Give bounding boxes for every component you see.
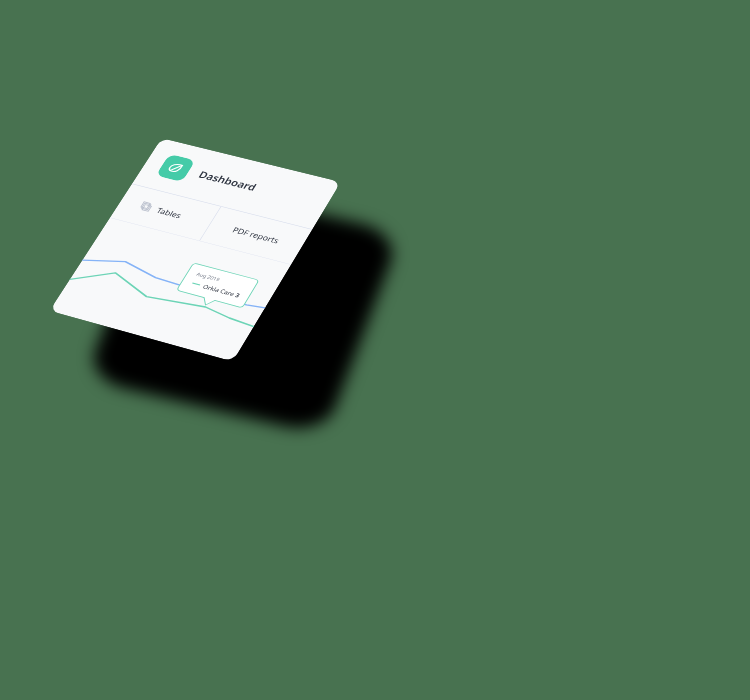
- other: Leaf logo: [155, 154, 196, 182]
- button[interactable]: Tables: [110, 184, 221, 240]
- staticText: Tables: [154, 205, 184, 220]
- staticText: Dashboard: [196, 168, 259, 194]
- staticText: PDF reports: [230, 225, 281, 246]
- staticText: 3: [234, 291, 242, 299]
- staticText: Aug 2019: [195, 271, 222, 283]
- staticText: Orkla Care: [201, 282, 236, 298]
- button[interactable]: PDF reports: [200, 207, 312, 264]
- button[interactable]: Leaf logo: [132, 138, 341, 229]
